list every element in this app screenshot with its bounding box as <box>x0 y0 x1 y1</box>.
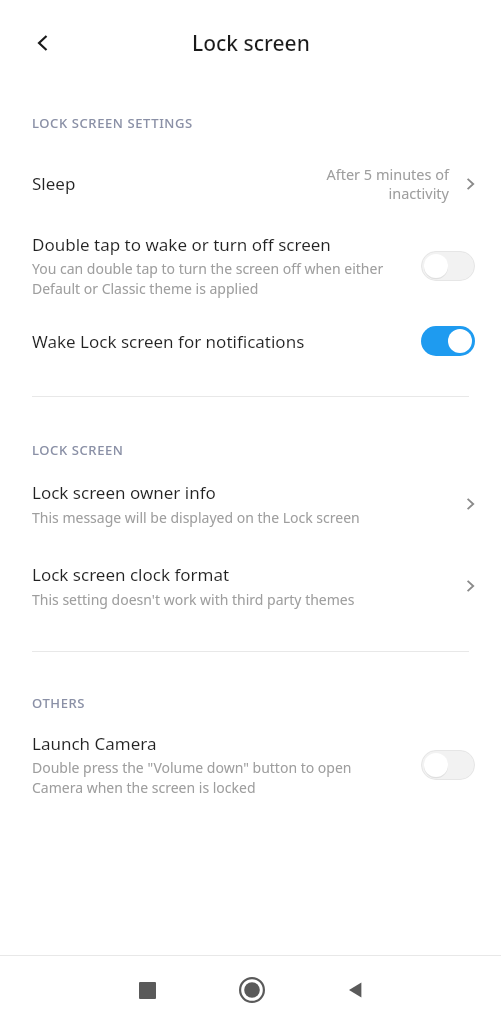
button[interactable]: Home <box>223 961 281 1019</box>
button[interactable]: Lock screen owner info <box>0 477 501 531</box>
staticText: This setting doesn't work with third par… <box>32 590 355 609</box>
button[interactable]: Toggle on <box>419 324 477 358</box>
button[interactable]: Sleep <box>0 150 501 217</box>
staticText: Sleep <box>32 172 299 195</box>
staticText: Lock screen <box>192 29 310 58</box>
button[interactable]: Launch Camera <box>0 730 501 799</box>
staticText: LOCK SCREEN SETTINGS <box>32 114 193 132</box>
staticText: Lock screen clock format <box>32 563 230 586</box>
staticText: Lock screen owner info <box>32 481 216 504</box>
staticText: Double press the "Volume down" button to… <box>32 758 405 797</box>
button[interactable]: Back <box>326 961 384 1019</box>
button[interactable]: Recent apps <box>118 961 176 1019</box>
button[interactable]: Toggle off <box>419 748 477 782</box>
staticText: LOCK SCREEN <box>32 441 124 459</box>
staticText: After 5 minutes of inactivity <box>299 164 449 203</box>
staticText: OTHERS <box>32 694 86 712</box>
staticText: Double tap to wake or turn off screen <box>32 233 331 256</box>
staticText: You can double tap to turn the screen of… <box>32 259 405 298</box>
staticText: Launch Camera <box>32 732 157 755</box>
button[interactable]: Toggle off <box>419 249 477 283</box>
button[interactable]: Back <box>22 22 64 64</box>
staticText: Wake Lock screen for notifications <box>32 330 305 353</box>
staticText: This message will be displayed on the Lo… <box>32 508 360 527</box>
button[interactable]: Wake Lock screen for notifications <box>0 322 501 360</box>
button[interactable]: Double tap to wake or turn off screen <box>0 231 501 300</box>
button[interactable]: Lock screen clock format <box>0 559 501 613</box>
